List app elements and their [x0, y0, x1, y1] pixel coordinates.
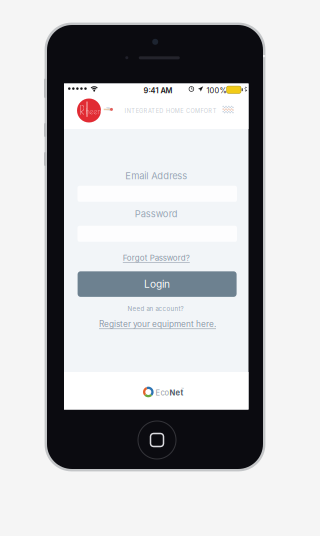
button[interactable]: Login	[78, 271, 237, 297]
staticText: Register your equipment here.	[99, 319, 216, 329]
button[interactable]: Register your equipment here.	[64, 83, 204, 93]
staticText: ™	[181, 388, 184, 393]
staticText: Login	[144, 278, 170, 290]
staticText: INTEGRATED HOME COMFORT	[124, 107, 217, 114]
staticText: 100%	[206, 86, 226, 95]
staticText: Password	[135, 208, 178, 220]
staticText: Email Address	[125, 170, 187, 182]
staticText: Forgot Password?	[123, 253, 190, 263]
staticText: 9:41 AM	[143, 86, 172, 95]
staticText: Eco	[155, 388, 169, 397]
staticText: R	[79, 102, 84, 117]
button[interactable]: Forgot Password?	[64, 83, 154, 93]
staticText: heem	[86, 107, 104, 116]
staticText: Net	[169, 388, 183, 397]
staticText: Need an account?	[127, 305, 183, 312]
